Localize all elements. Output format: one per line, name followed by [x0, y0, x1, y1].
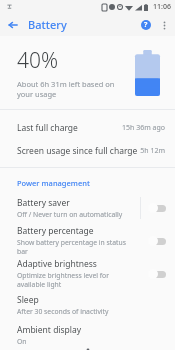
staticText: Battery saver: [17, 197, 70, 209]
button[interactable]: Adaptive brightness: [0, 257, 175, 290]
button[interactable]: Back: [3, 15, 23, 35]
button[interactable]: Adaptive brightness toggle: [141, 257, 175, 290]
button[interactable]: More options: [155, 16, 173, 34]
button[interactable]: Ambient display: [0, 320, 175, 350]
staticText: After 30 seconds of inactivity: [17, 307, 109, 316]
staticText: Battery percentage: [17, 225, 94, 237]
staticText: On: [17, 337, 27, 346]
staticText: ?: [144, 20, 148, 30]
staticText: Optimize brightness level for available …: [17, 271, 132, 289]
staticText: Adaptive brightness: [17, 258, 97, 270]
staticText: Battery: [28, 17, 67, 32]
staticText: 15h 36m ago: [122, 123, 165, 133]
staticText: 40%: [17, 46, 59, 75]
button[interactable]: Battery percentage: [0, 224, 175, 257]
staticText: Screen usage since full charge: [17, 145, 140, 157]
staticText: 5h 12m: [140, 146, 165, 156]
button[interactable]: Battery saver: [0, 191, 175, 224]
button[interactable]: Battery saver toggle: [141, 191, 175, 224]
staticText: Sleep: [17, 294, 39, 306]
button[interactable]: Sleep: [0, 290, 175, 320]
button[interactable]: Help: [137, 16, 155, 34]
button[interactable]: Last full charge: [0, 116, 175, 139]
staticText: Last full charge: [17, 122, 122, 134]
staticText: Show battery percentage in status bar: [17, 238, 132, 256]
button[interactable]: Battery percentage toggle: [141, 224, 175, 257]
staticText: Power management: [17, 178, 90, 188]
button[interactable]: Screen usage since full charge: [0, 139, 175, 162]
staticText: Ambient display: [17, 324, 82, 336]
staticText: 11:06: [153, 2, 171, 12]
staticText: Off / Never turn on automatically: [17, 210, 123, 219]
staticText: About 6h 31m left based on your usage: [17, 79, 115, 99]
